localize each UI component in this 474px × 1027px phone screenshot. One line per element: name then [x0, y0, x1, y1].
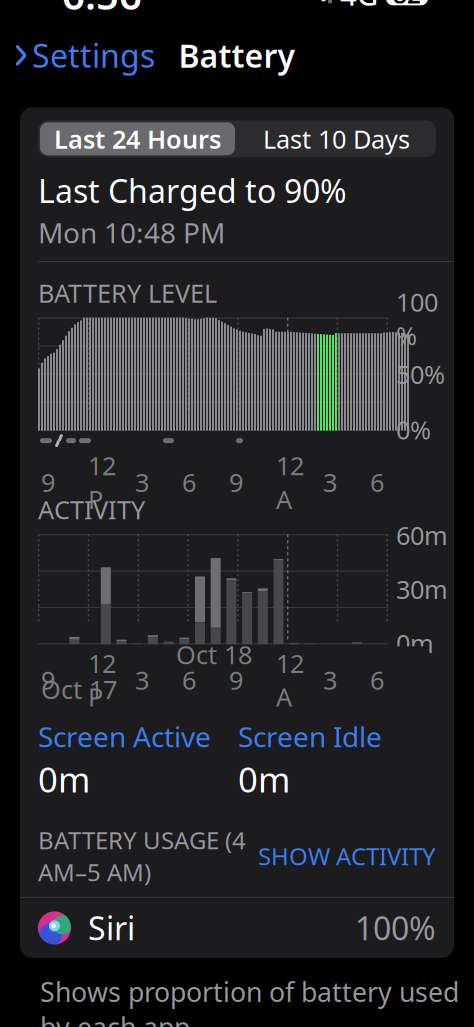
staticText: 6: [370, 465, 384, 499]
staticText: 0m: [238, 756, 290, 802]
staticText: ACTIVITY: [38, 493, 145, 526]
staticText: 100%: [355, 907, 436, 949]
staticText: 6: [182, 465, 196, 499]
staticText: Mon 10:48 PM: [38, 214, 225, 251]
staticText: Last Charged to 90%: [38, 169, 347, 212]
staticText: Screen Idle: [238, 718, 382, 755]
staticText: Oct 17: [41, 672, 117, 706]
button[interactable]: Siri: [20, 898, 454, 958]
staticText: Oct 18: [176, 638, 252, 671]
staticText: 12 A: [276, 646, 304, 714]
staticText: 9: [41, 663, 55, 697]
button[interactable]: Last 10 Days: [239, 122, 434, 155]
staticText: Settings: [32, 34, 155, 77]
staticText: Battery: [178, 34, 295, 77]
staticText: 9: [41, 465, 55, 499]
button[interactable]: Screen Idle: [238, 718, 382, 755]
staticText: 6: [370, 663, 384, 697]
staticText: 82: [393, 0, 421, 10]
staticText: 12 P: [88, 646, 116, 714]
staticText: 0m: [38, 756, 90, 802]
staticText: BATTERY USAGE (4 AM–5 AM): [38, 824, 246, 888]
staticText: 9: [229, 663, 243, 697]
staticText: 50%: [396, 357, 445, 391]
button[interactable]: SHOW ACTIVITY: [258, 840, 436, 872]
staticText: 100%: [396, 285, 438, 352]
staticText: 60m: [396, 518, 448, 552]
button[interactable]: Settings: [0, 26, 155, 85]
staticText: 3: [323, 663, 337, 697]
staticText: 12 A: [276, 449, 304, 516]
staticText: 6: [182, 663, 196, 697]
staticText: 30m: [396, 572, 448, 606]
button[interactable]: Screen Active: [38, 718, 211, 755]
staticText: Last 10 Days: [263, 122, 410, 156]
staticText: 3: [135, 465, 149, 499]
staticText: SHOW ACTIVITY: [258, 840, 436, 872]
staticText: Last 24 Hours: [54, 122, 221, 156]
staticText: 0m: [396, 626, 434, 660]
staticText: 6:56: [62, 0, 142, 21]
staticText: BATTERY LEVEL: [38, 276, 217, 310]
staticText: Siri: [88, 907, 135, 949]
staticText: 9: [229, 465, 243, 499]
staticText: 0%: [396, 413, 431, 446]
staticText: Shows proportion of battery used by each…: [40, 974, 459, 1027]
staticText: 4G: [340, 0, 378, 14]
staticText: Screen Active: [38, 718, 211, 755]
staticText: 3: [323, 465, 337, 499]
staticText: 3: [135, 663, 149, 697]
staticText: 12 P: [88, 449, 116, 516]
button[interactable]: Last 24 Hours: [40, 122, 235, 155]
